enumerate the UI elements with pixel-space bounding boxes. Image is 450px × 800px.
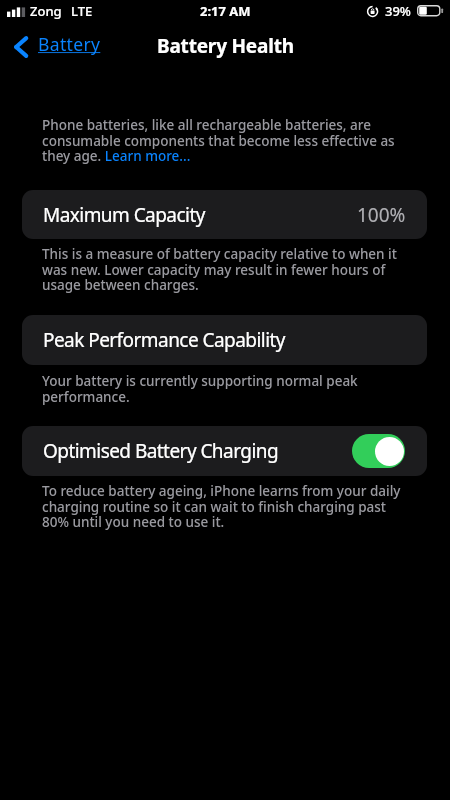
button[interactable]: Optimised Battery Charging, on: [352, 434, 405, 468]
staticText: Peak Performance Capability: [43, 327, 285, 353]
staticText: Zong: [30, 2, 62, 20]
button[interactable]: Peak Performance Capability: [22, 315, 427, 365]
staticText: This is a measure of battery capacity re…: [42, 245, 410, 294]
button[interactable]: Maximum Capacity: [22, 190, 427, 239]
other: Cellular signal strength: [7, 6, 26, 17]
staticText: Optimised Battery Charging: [43, 438, 279, 464]
staticText: 100%: [357, 202, 406, 228]
other: Rotation lock: [367, 5, 379, 17]
staticText: LTE: [71, 2, 93, 20]
staticText: To reduce battery ageing, iPhone learns …: [42, 482, 410, 531]
staticText: Maximum Capacity: [43, 202, 205, 228]
button[interactable]: Back: [9, 30, 101, 58]
staticText: Your battery is currently supporting nor…: [42, 372, 410, 406]
staticText: Battery: [38, 32, 101, 56]
staticText: Battery Health: [157, 33, 294, 59]
other: Battery 39 percent: [417, 5, 444, 17]
staticText: 2:17 AM: [200, 2, 251, 20]
staticText: Phone batteries, like all rechargeable b…: [42, 116, 410, 165]
other: Back: [9, 32, 29, 56]
staticText: 39%: [385, 2, 411, 20]
button[interactable]: Phone batteries, like all rechargeable b…: [42, 116, 410, 165]
